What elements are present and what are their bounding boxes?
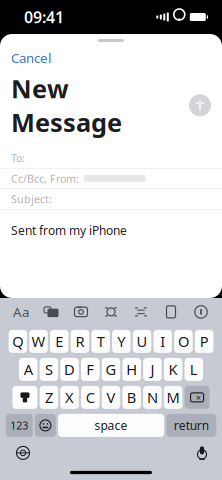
staticText: New Message [11,72,122,139]
staticText: D [64,360,75,379]
staticText: Y [117,332,125,351]
button[interactable]: Subject: [0,189,222,209]
button[interactable]: Cc/Bcc, From: [0,168,222,188]
button[interactable]: H [122,358,141,381]
staticText: return [174,417,209,433]
staticText: R [75,332,84,351]
staticText: E [55,332,63,351]
staticText: Cc/Bcc, From: [11,171,79,186]
staticText: P [200,332,209,351]
button[interactable]: Text formatting [11,302,31,322]
button[interactable]: N [143,386,162,409]
staticText: H [126,360,137,379]
staticText: C [86,388,95,407]
button[interactable]: Photos [41,302,61,322]
staticText: J [150,360,154,379]
button[interactable]: Delete [184,386,209,409]
staticText: Aa [13,303,29,321]
staticText: M [167,388,180,407]
button[interactable]: Dictate [195,445,209,461]
staticText: K [169,360,178,379]
button[interactable]: Camera [71,302,91,322]
button[interactable]: Attach file [161,302,181,322]
button[interactable]: To: [0,148,222,168]
button[interactable]: F [81,358,99,381]
button[interactable]: X [60,386,79,409]
staticText: L [190,360,198,379]
staticText: To: [11,151,25,165]
button[interactable]: D [60,358,79,381]
staticText: B [127,388,137,407]
button[interactable]: 123 [6,414,33,437]
button[interactable]: O [174,330,193,353]
button[interactable]: R [71,330,89,353]
staticText: 123 [10,418,28,432]
button[interactable]: Emoji [35,414,56,437]
button[interactable]: M [164,386,182,409]
staticText: I [160,332,165,351]
button[interactable]: Y [112,330,131,353]
button[interactable]: G [102,358,120,381]
button[interactable]: I [153,330,172,353]
staticText: F [86,360,94,379]
button[interactable]: J [143,358,162,381]
staticText: X [65,388,74,407]
staticText: × [196,391,201,404]
staticText: A [24,360,33,379]
button[interactable]: Send [189,94,211,116]
staticText: G [105,360,116,379]
button[interactable]: L [185,358,203,381]
button[interactable]: K [164,358,182,381]
button[interactable]: space [58,414,164,437]
staticText: Cancel [11,49,51,67]
button[interactable]: E [50,330,68,353]
button[interactable]: Q [9,330,27,353]
button[interactable]: Markup [191,302,211,322]
staticText: Q [12,332,23,351]
button[interactable]: U [133,330,151,353]
button[interactable]: Cancel [8,46,54,70]
staticText: N [147,388,158,407]
staticText: Subject: [11,192,52,206]
button[interactable]: W [29,330,48,353]
staticText: 09:41 [24,6,64,28]
staticText: U [137,332,148,351]
button[interactable]: T [91,330,110,353]
button[interactable]: Scan text [101,302,121,322]
staticText: T [97,332,105,351]
button[interactable]: A [19,358,37,381]
staticText: Sent from my iPhone [11,222,127,238]
button[interactable]: B [122,386,141,409]
button[interactable]: C [81,386,99,409]
staticText: space [95,417,128,433]
button[interactable]: Z [40,386,58,409]
button[interactable]: P [195,330,213,353]
button[interactable]: Scan document [131,302,151,322]
staticText: W [31,332,45,351]
button[interactable]: S [40,358,58,381]
staticText: S [45,360,53,379]
button[interactable]: V [102,386,120,409]
staticText: V [106,388,115,407]
button[interactable]: Next keyboard [13,443,33,463]
button[interactable]: Shift [12,386,37,409]
staticText: Z [45,388,53,407]
staticText: O [178,332,189,351]
button[interactable]: return [166,414,216,437]
